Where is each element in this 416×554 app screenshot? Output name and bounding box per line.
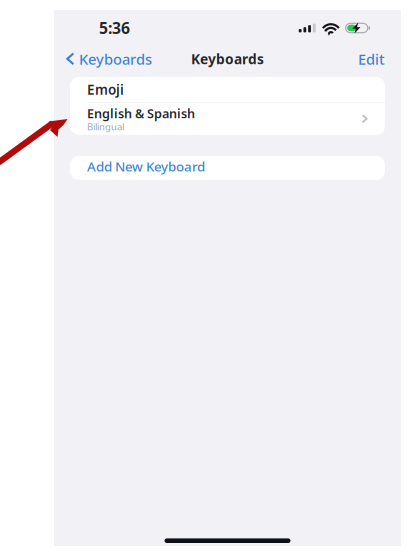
- button[interactable]: Emoji: [70, 77, 385, 102]
- button[interactable]: Add New Keyboard: [70, 156, 385, 180]
- staticText: 5:36: [99, 17, 130, 39]
- button[interactable]: Edit: [358, 46, 401, 72]
- staticText: Keyboards: [79, 49, 152, 69]
- staticText: Add New Keyboard: [87, 157, 205, 175]
- staticText: English & Spanish: [87, 105, 195, 122]
- staticText: Keyboards: [191, 50, 264, 68]
- button[interactable]: English & Spanish: [70, 103, 385, 135]
- staticText: Bilingual: [87, 120, 124, 133]
- button[interactable]: Keyboards: [54, 46, 152, 72]
- staticText: Emoji: [87, 80, 124, 99]
- staticText: Edit: [358, 49, 385, 69]
